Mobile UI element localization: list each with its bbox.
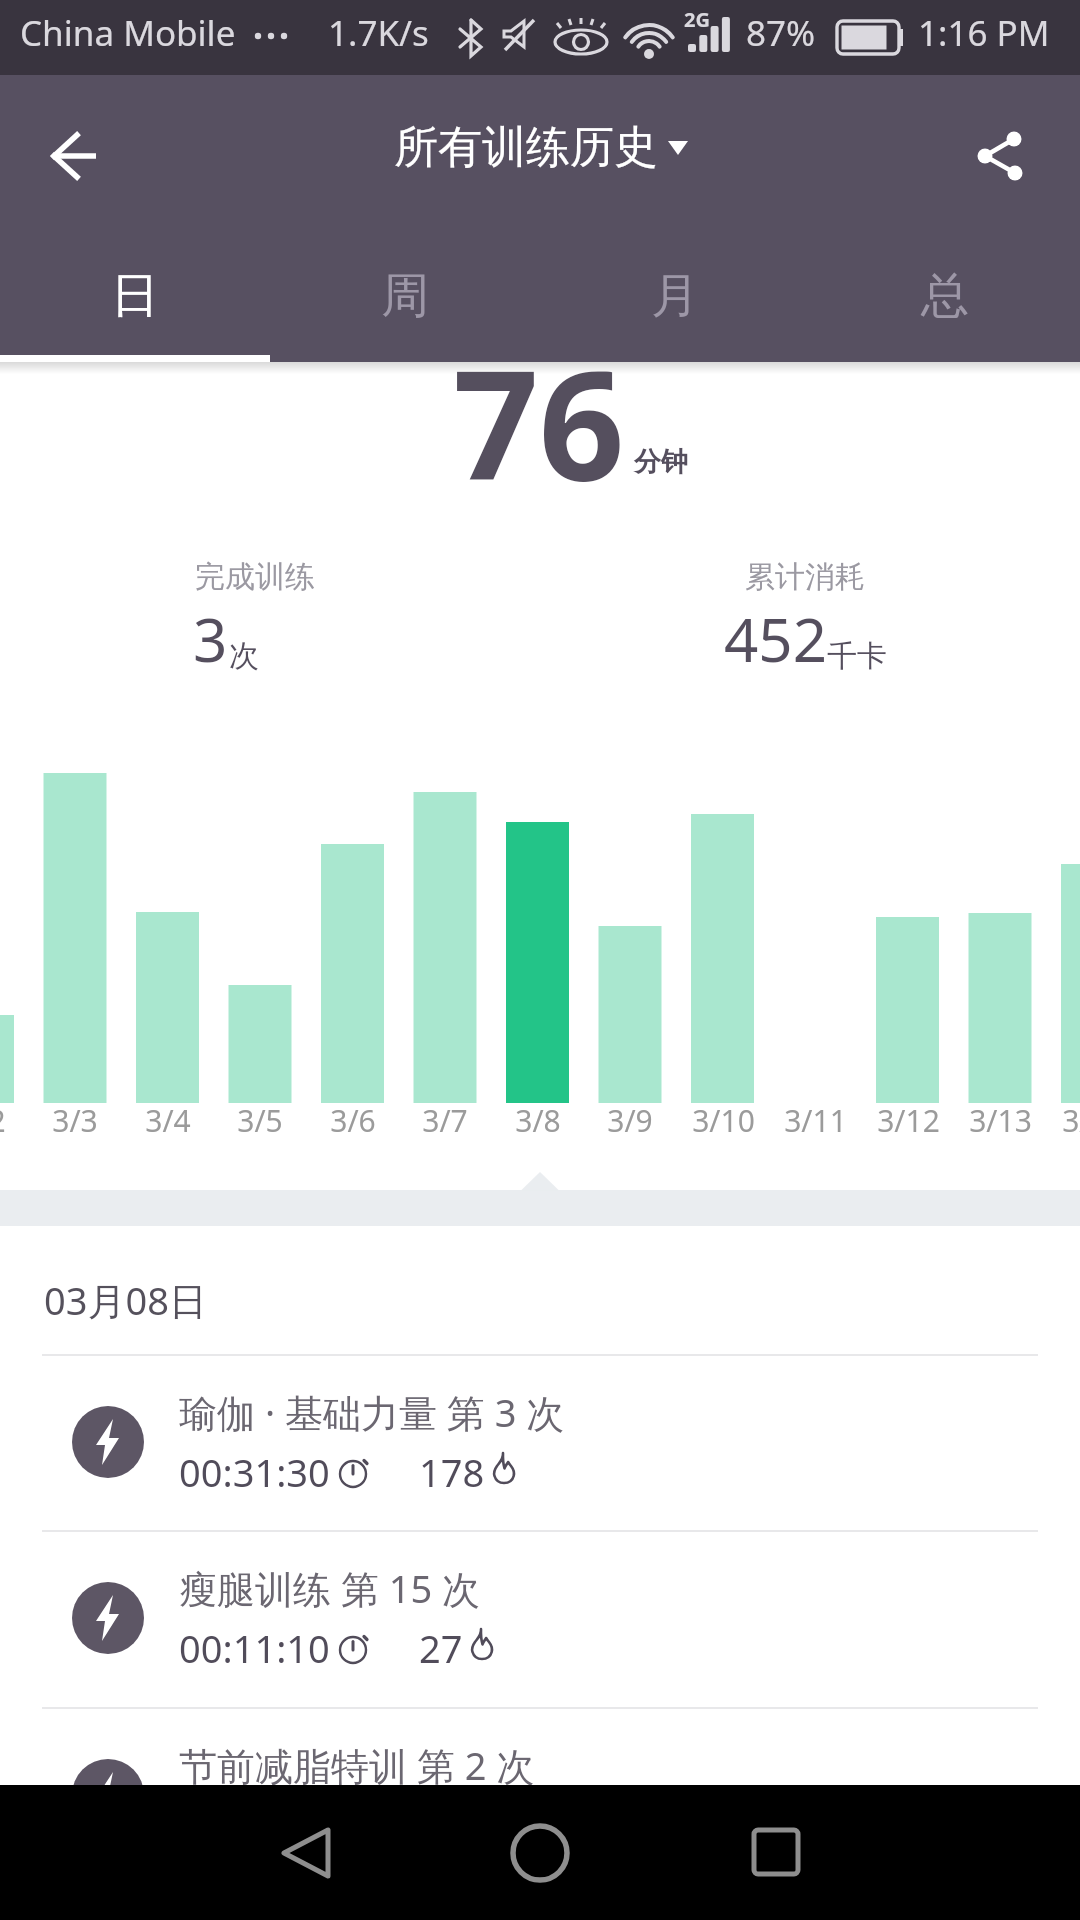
- button[interactable]: 3/3: [29, 1100, 121, 1141]
- staticText: 27: [419, 1622, 463, 1674]
- staticText: 3/8: [515, 1100, 561, 1141]
- staticText: 3/3: [52, 1100, 98, 1141]
- staticText: 3/10: [692, 1100, 755, 1141]
- button[interactable]: 3/4: [122, 1100, 214, 1141]
- staticText: 瑜伽 · 基础力量 第 3 次: [179, 1386, 565, 1438]
- staticText: 3/13: [969, 1100, 1032, 1141]
- button[interactable]: 3/13: [954, 1100, 1046, 1141]
- staticText: 1.7K/s: [328, 9, 429, 57]
- staticText: 周: [381, 266, 429, 326]
- staticText: 1:16 PM: [918, 9, 1050, 57]
- staticText: 节前减脂特训 第 2 次: [179, 1739, 535, 1791]
- button[interactable]: 3/14: [1047, 1100, 1080, 1141]
- button[interactable]: 3/12: [862, 1100, 954, 1141]
- button[interactable]: 节前减脂特训 第 2 次: [0, 1707, 1080, 1883]
- button[interactable]: 瑜伽 · 基础力量 第 3 次: [0, 1354, 1080, 1530]
- button[interactable]: 3/9: [584, 1100, 676, 1141]
- staticText: 00:33:20: [179, 1799, 330, 1851]
- button[interactable]: [722, 1803, 832, 1903]
- staticText: 3/4: [145, 1100, 191, 1141]
- button[interactable]: 周: [270, 239, 540, 353]
- button[interactable]: 所有训练历史: [380, 115, 700, 185]
- button[interactable]: [955, 111, 1045, 201]
- staticText: 3/11: [784, 1100, 847, 1141]
- staticText: 03月08日: [44, 1274, 207, 1326]
- button[interactable]: 3/7: [399, 1100, 491, 1141]
- staticText: 3/14: [1062, 1100, 1080, 1141]
- button[interactable]: 日: [0, 239, 270, 353]
- staticText: 2G: [684, 6, 710, 33]
- staticText: 00:31:30: [179, 1446, 330, 1498]
- staticText: 3/5: [237, 1100, 283, 1141]
- button[interactable]: 3/11: [769, 1100, 861, 1141]
- staticText: 00:11:10: [179, 1622, 330, 1674]
- staticText: 月: [651, 266, 699, 326]
- staticText: 日: [111, 266, 159, 326]
- staticText: 千卡: [827, 637, 887, 675]
- staticText: 分钟: [634, 445, 688, 479]
- button[interactable]: 3/8: [492, 1100, 584, 1141]
- staticText: 178: [419, 1446, 485, 1498]
- button[interactable]: 总: [810, 239, 1080, 353]
- staticText: 完成训练: [195, 558, 315, 596]
- button[interactable]: 瘦腿训练 第 15 次: [0, 1530, 1080, 1706]
- staticText: China Mobile: [20, 9, 236, 57]
- staticText: 3/12: [877, 1100, 940, 1141]
- staticText: 3: [193, 598, 228, 680]
- staticText: 瘦腿训练 第 15 次: [179, 1562, 481, 1614]
- button[interactable]: 月: [540, 239, 810, 353]
- staticText: 次: [229, 637, 259, 675]
- staticText: 总: [921, 266, 969, 326]
- staticText: 所有训练历史: [394, 120, 658, 175]
- staticText: 3/9: [607, 1100, 653, 1141]
- staticText: 76: [453, 320, 625, 524]
- staticText: 3/7: [422, 1100, 468, 1141]
- button[interactable]: 3/10: [677, 1100, 769, 1141]
- staticText: 87%: [746, 9, 816, 57]
- button[interactable]: [485, 1803, 595, 1903]
- staticText: 3/6: [330, 1100, 376, 1141]
- button[interactable]: [250, 1803, 360, 1903]
- staticText: 3/2: [0, 1100, 6, 1141]
- button[interactable]: 3/6: [307, 1100, 399, 1141]
- button[interactable]: [30, 111, 120, 201]
- button[interactable]: 3/5: [214, 1100, 306, 1141]
- staticText: 452: [724, 598, 827, 680]
- button[interactable]: 3/2: [0, 1100, 29, 1141]
- staticText: 累计消耗: [745, 558, 865, 596]
